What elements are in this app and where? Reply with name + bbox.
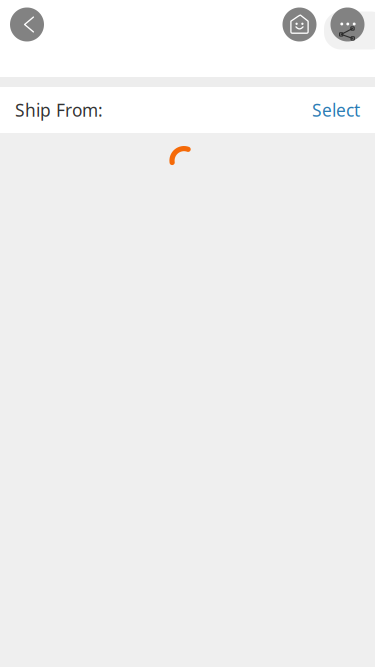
button[interactable]: Select (288, 86, 360, 133)
button[interactable]: Home (277, 2, 321, 46)
button[interactable]: Back (5, 2, 49, 46)
staticText: Select (312, 98, 360, 121)
button[interactable]: Share (325, 2, 369, 46)
staticText: Ship From: (15, 98, 103, 121)
